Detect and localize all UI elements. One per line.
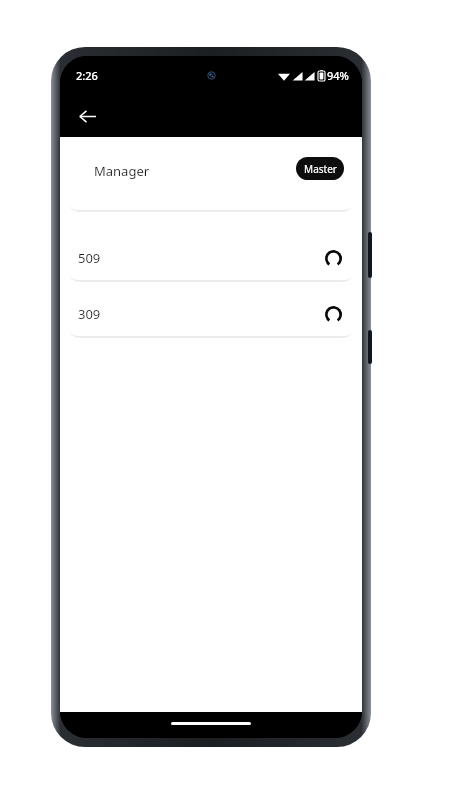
staticText: 309	[78, 305, 101, 323]
button[interactable]: Manager	[66, 145, 356, 210]
button[interactable]: Master	[296, 157, 344, 180]
staticText: 94%	[327, 68, 349, 83]
button[interactable]: Refresh	[318, 299, 348, 329]
staticText: 2:26	[76, 68, 98, 83]
staticText: 509	[78, 249, 101, 267]
button[interactable]: 309	[66, 291, 356, 336]
button[interactable]: Back	[70, 99, 104, 133]
button[interactable]: Refresh	[318, 243, 348, 273]
button[interactable]: 509	[66, 235, 356, 280]
staticText: Manager	[94, 162, 150, 180]
staticText: Master	[304, 162, 337, 176]
